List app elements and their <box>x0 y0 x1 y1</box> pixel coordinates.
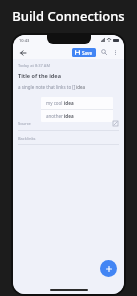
staticText: idea <box>64 100 74 106</box>
staticText: Title of the idea <box>18 72 61 79</box>
staticText: Save <box>82 50 93 56</box>
staticText: my cool <box>46 100 64 106</box>
button[interactable]: Search <box>99 47 109 57</box>
staticText: another <box>46 113 64 119</box>
staticText: Today at 8:37 AM <box>18 63 51 68</box>
button[interactable]: Open source link <box>111 119 119 127</box>
button[interactable]: Back <box>17 47 28 58</box>
staticText: idea <box>64 113 74 119</box>
staticText: Build Connections <box>12 7 125 25</box>
staticText: Backlinks <box>18 136 36 141</box>
button[interactable]: another <box>41 110 113 122</box>
staticText: 10:43 <box>19 38 30 43</box>
staticText: a single note that links to [[ <box>18 84 76 90</box>
staticText: Source <box>18 121 31 126</box>
button[interactable]: Save <box>72 48 96 57</box>
button[interactable]: my cool <box>41 97 113 109</box>
button[interactable]: Add note <box>100 260 117 277</box>
button[interactable]: More options <box>110 47 120 57</box>
staticText: idea <box>76 84 85 90</box>
